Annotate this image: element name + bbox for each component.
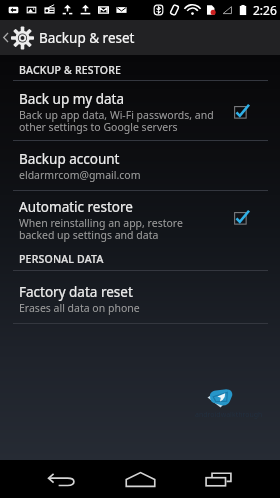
staticText: 2:26: [253, 2, 277, 18]
staticText: androidwalkthrough: [195, 410, 263, 420]
button[interactable]: Back: [38, 464, 86, 494]
button[interactable]: Back up my data: [0, 81, 280, 140]
button[interactable]: Recents: [194, 464, 242, 494]
staticText: Erases all data on phone: [19, 301, 140, 315]
staticText: PERSONAL DATA: [19, 252, 104, 266]
staticText: Backup & reset: [39, 29, 135, 47]
staticText: eldarmrcom@gmail.com: [19, 168, 141, 182]
other: Back: [1, 30, 10, 45]
staticText: When reinstalling an app, restore backed…: [19, 216, 183, 242]
staticText: Factory data reset: [19, 283, 133, 301]
button[interactable]: Automatic restore: [0, 191, 280, 242]
staticText: Automatic restore: [19, 198, 133, 216]
button[interactable]: Back: [0, 20, 280, 55]
button[interactable]: Factory data reset: [0, 271, 280, 323]
button[interactable]: Home: [116, 464, 164, 494]
staticText: Back up app data, Wi-Fi passwords, and o…: [19, 108, 214, 134]
staticText: BACKUP & RESTORE: [19, 63, 122, 77]
staticText: Back up my data: [19, 90, 125, 108]
staticText: Backup account: [19, 150, 120, 168]
button[interactable]: Backup account: [0, 141, 280, 190]
